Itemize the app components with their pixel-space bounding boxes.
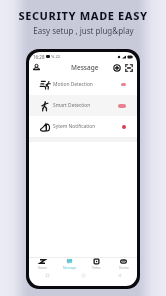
staticText: Home: [38, 266, 48, 270]
button[interactable]: Home: [65, 269, 101, 281]
staticText: Video: [92, 266, 101, 270]
staticText: Sytem Notification: [53, 123, 96, 130]
staticText: Easy setup , just plug&play: [33, 25, 134, 36]
button[interactable]: Message: [56, 253, 83, 270]
button[interactable]: Back: [29, 269, 65, 281]
button[interactable]: Add device: [113, 64, 121, 72]
staticText: Message: [63, 266, 77, 270]
button[interactable]: Smart Detection: [29, 95, 137, 116]
button[interactable]: Account: [32, 63, 41, 72]
staticText: Device: [119, 266, 129, 270]
button[interactable]: Motion Detection: [29, 74, 137, 95]
button[interactable]: Video: [83, 253, 110, 270]
staticText: 16:28: [33, 54, 45, 60]
button[interactable]: Recents: [101, 269, 137, 281]
staticText: Motion Detection: [53, 81, 93, 88]
staticText: Smart Detection: [53, 102, 91, 109]
staticText: Message: [71, 63, 99, 72]
button[interactable]: Device: [110, 253, 137, 270]
staticText: SECURITY MADE EASY: [18, 8, 148, 23]
button[interactable]: Sytem Notification: [29, 116, 137, 137]
button[interactable]: Home: [29, 253, 56, 270]
button[interactable]: Scan QR code: [125, 64, 133, 72]
staticText: %.22: [51, 54, 60, 59]
